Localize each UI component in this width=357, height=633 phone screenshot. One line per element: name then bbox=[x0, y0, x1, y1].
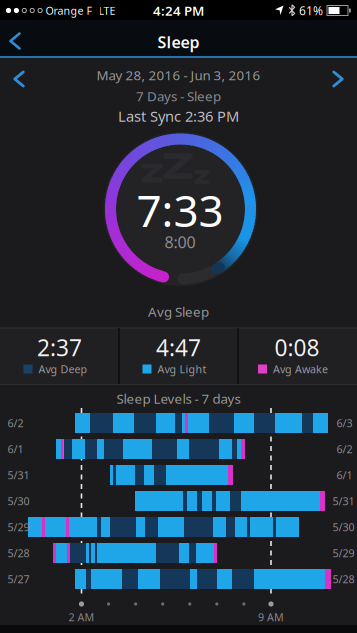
staticText: 5/29 bbox=[7, 520, 29, 534]
staticText: 6/2 bbox=[336, 442, 352, 456]
staticText: Sleep bbox=[157, 31, 199, 53]
staticText: Sleep Levels - 7 days bbox=[116, 390, 240, 407]
staticText: 7 Days - Sleep bbox=[136, 87, 221, 105]
staticText: 9 AM bbox=[258, 610, 284, 624]
staticText: 6/2 bbox=[7, 416, 23, 430]
staticText: 8:00 bbox=[164, 231, 195, 253]
staticText: Orange F bbox=[45, 3, 92, 18]
staticText: Avg Awake bbox=[273, 362, 328, 376]
button[interactable]: Next week bbox=[316, 57, 357, 101]
staticText: 5/29 bbox=[332, 546, 354, 560]
button[interactable]: Previous week bbox=[0, 57, 41, 101]
button[interactable]: Back bbox=[0, 22, 37, 60]
staticText: 5/31 bbox=[7, 468, 29, 482]
staticText: 4:24 PM bbox=[153, 2, 204, 19]
staticText: Avg Light bbox=[157, 362, 206, 376]
staticText: 4:47 bbox=[156, 332, 201, 362]
staticText: 0:08 bbox=[274, 332, 319, 362]
staticText: 5/31 bbox=[332, 494, 354, 508]
staticText: 6/3 bbox=[336, 416, 352, 430]
staticText: 2 AM bbox=[68, 610, 94, 624]
staticText: Avg Deep bbox=[38, 362, 87, 376]
staticText: 5/28 bbox=[7, 546, 29, 560]
staticText: LTE bbox=[98, 3, 115, 18]
staticText: 7:33 bbox=[136, 181, 223, 239]
staticText: May 28, 2016 - Jun 3, 2016 bbox=[96, 66, 260, 84]
staticText: 5/28 bbox=[332, 572, 354, 586]
staticText: Last Sync 2:36 PM bbox=[118, 106, 239, 126]
staticText: 6/1 bbox=[7, 442, 23, 456]
staticText: 5/30 bbox=[7, 494, 29, 508]
staticText: Avg Sleep bbox=[148, 303, 209, 320]
staticText: 6/1 bbox=[336, 468, 352, 482]
staticText: 2:37 bbox=[37, 332, 82, 362]
staticText: 5/27 bbox=[7, 572, 29, 586]
staticText: 61% bbox=[299, 2, 323, 18]
staticText: 5/30 bbox=[332, 520, 354, 534]
